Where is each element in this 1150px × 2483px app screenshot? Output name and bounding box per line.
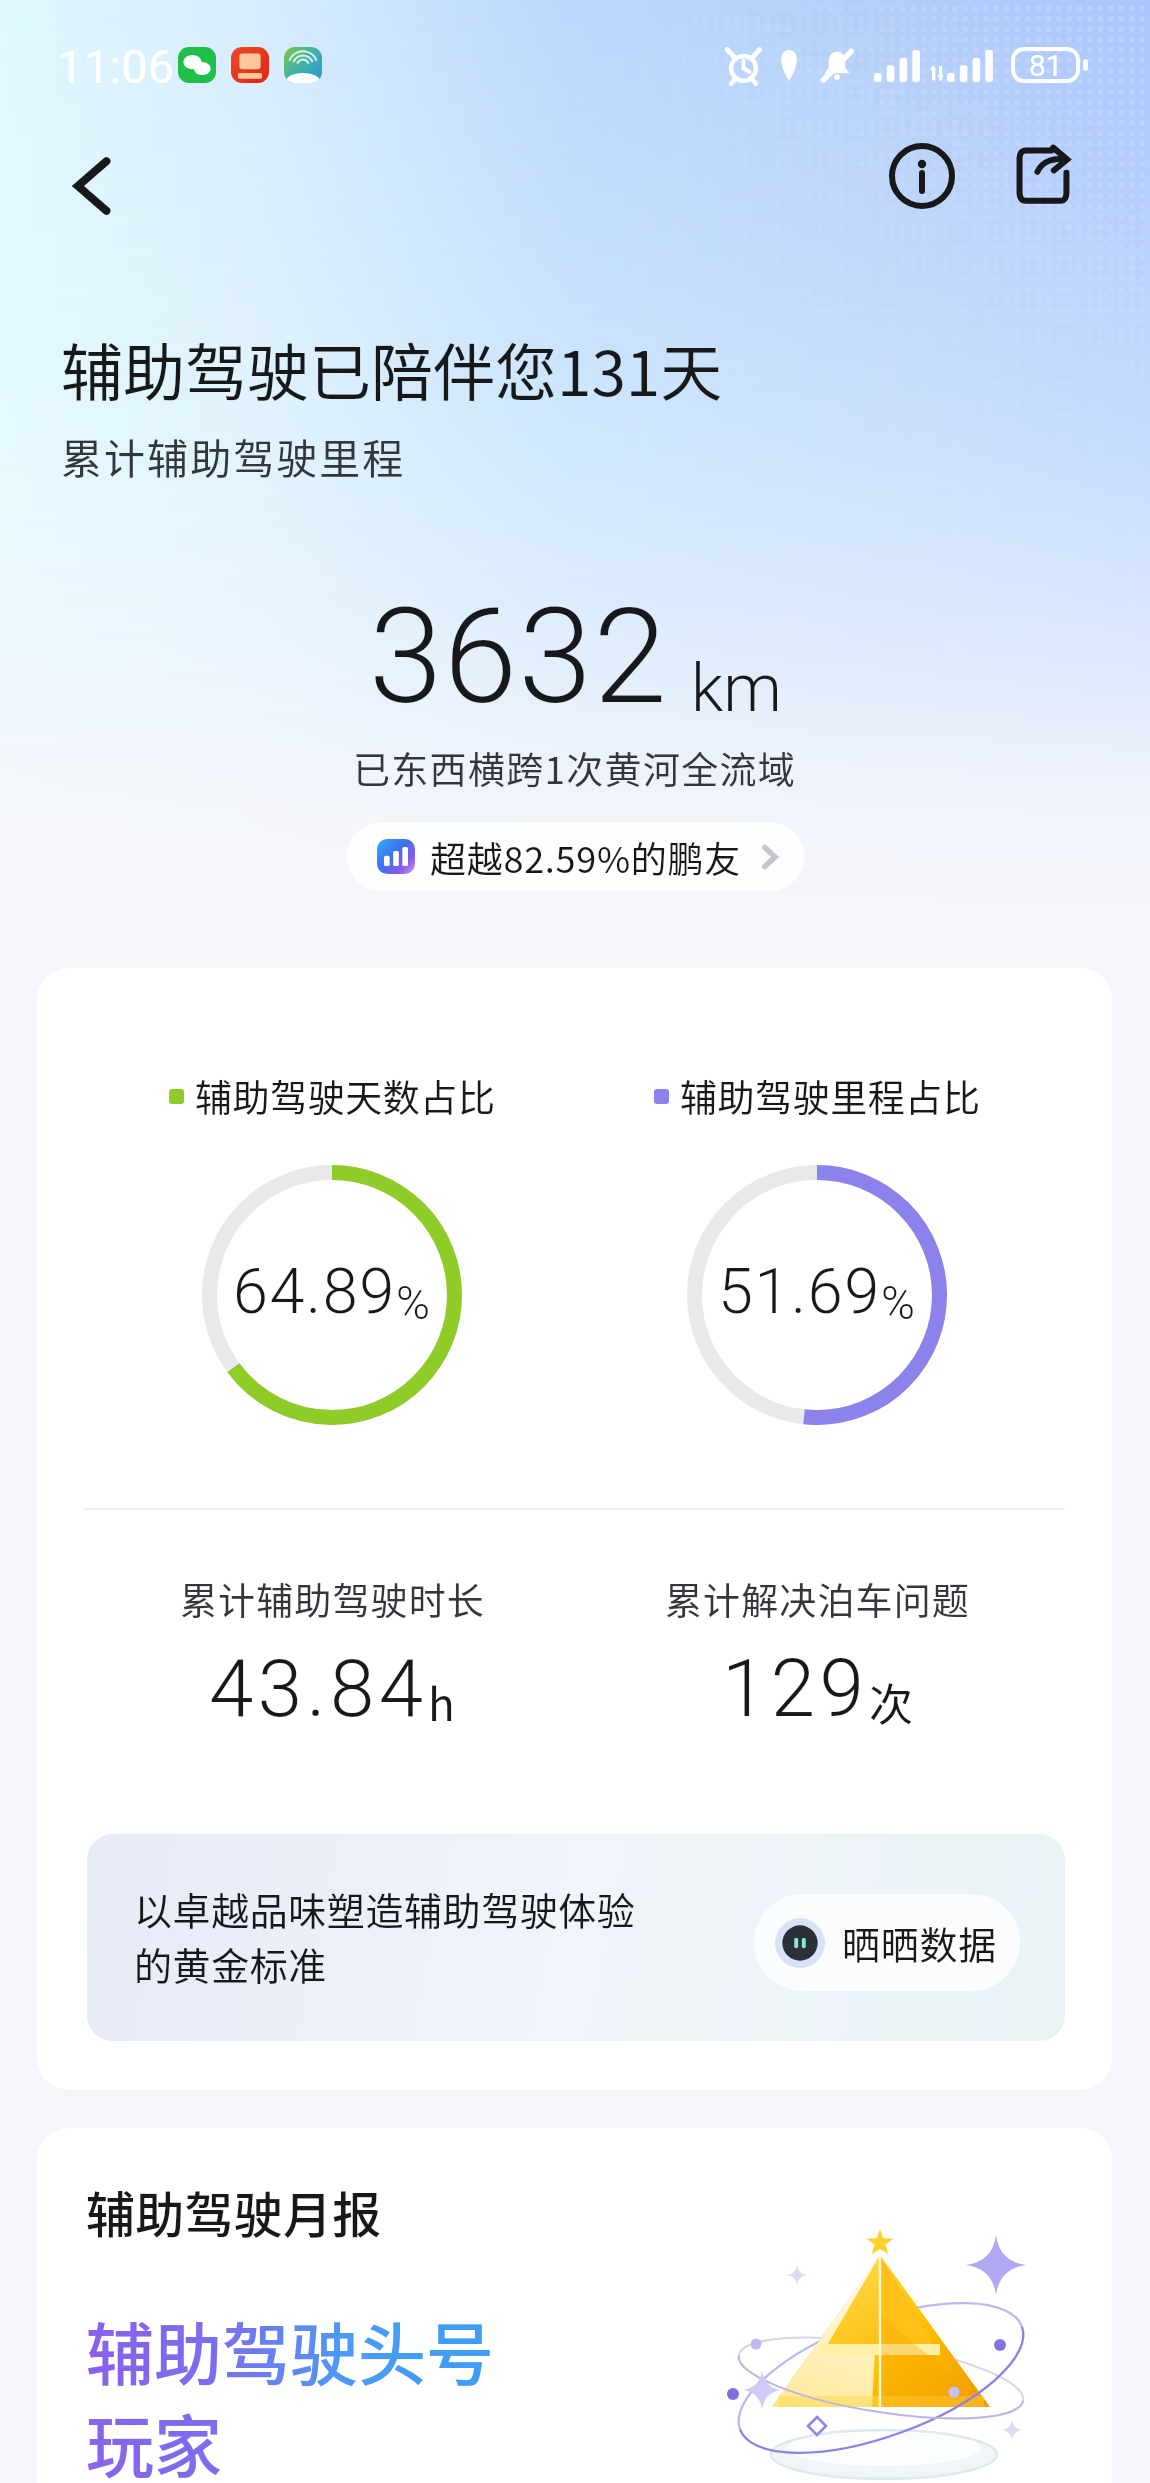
staticText: % [881, 1276, 916, 1330]
staticText: 晒晒数据 [842, 1915, 998, 1970]
staticText: 累计解决泊车问题 [665, 1572, 970, 1626]
staticText: 玩家 [86, 2393, 223, 2483]
staticText: 辅助驾驶头号 [86, 2301, 495, 2399]
staticText: 累计辅助驾驶时长 [180, 1572, 485, 1626]
button[interactable]: 晒晒数据 [754, 1894, 1020, 1991]
button[interactable]: 辅助驾驶月报 [37, 2128, 1112, 2483]
staticText: 次 [869, 1670, 913, 1734]
staticText: 辅助驾驶里程占比 [680, 1069, 981, 1123]
button[interactable]: 超越82.59%的鹏友 [347, 822, 804, 891]
staticText: km [691, 650, 782, 727]
staticText: 3632 [369, 580, 669, 735]
staticText: h [428, 1670, 455, 1734]
staticText: 129 [722, 1642, 869, 1736]
button[interactable]: Back [48, 140, 140, 232]
staticText: 以卓越品味塑造辅助驾驶体验 [134, 1881, 636, 1936]
staticText: 辅助驾驶月报 [86, 2176, 382, 2247]
staticText: 辅助驾驶天数占比 [195, 1069, 496, 1123]
staticText: % [396, 1276, 431, 1330]
staticText: 的黄金标准 [134, 1936, 327, 1991]
button[interactable]: Share [997, 130, 1089, 222]
staticText: 51.69 [718, 1255, 881, 1329]
staticText: 辅助驾驶已陪伴您131天 [61, 324, 723, 414]
staticText: 累计辅助驾驶里程 [61, 426, 406, 485]
staticText: 11:06 [57, 39, 175, 94]
staticText: 已东西横跨1次黄河全流域 [353, 741, 797, 795]
staticText: 64.89 [233, 1255, 396, 1329]
staticText: 81 [1029, 48, 1063, 83]
staticText: 43.84 [209, 1642, 428, 1736]
button[interactable]: Info [876, 130, 968, 222]
staticText: 超越82.59%的鹏友 [430, 831, 742, 883]
